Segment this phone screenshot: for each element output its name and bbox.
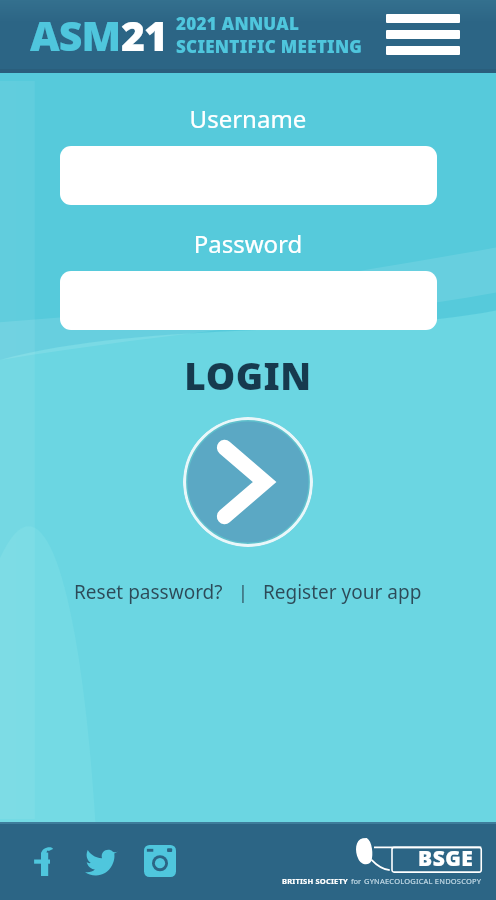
button[interactable]: Facebook xyxy=(22,839,66,883)
button[interactable]: Twitter xyxy=(80,839,124,883)
staticText: Register your app xyxy=(263,579,422,605)
staticText: SCIENTIFIC MEETING xyxy=(176,35,363,58)
button[interactable]: Reset password? xyxy=(70,576,227,608)
staticText: Password xyxy=(0,227,496,260)
staticText: Username xyxy=(0,102,496,135)
button[interactable]: Log in xyxy=(183,417,313,547)
staticText: GYNAECOLOGICAL ENDOSCOPY xyxy=(364,876,482,886)
staticText: BRITISH SOCIETY xyxy=(282,876,351,886)
staticText: BSGE xyxy=(418,844,474,873)
staticText: 2021 ANNUAL xyxy=(176,12,300,35)
button[interactable]: Register your app xyxy=(259,576,426,608)
staticText: Reset password? xyxy=(74,579,223,605)
staticText: ASM xyxy=(30,7,121,63)
staticText: LOGIN xyxy=(0,350,496,400)
staticText: 21 xyxy=(121,7,168,63)
button[interactable]: Instagram xyxy=(138,839,182,883)
staticText: for xyxy=(351,876,364,886)
button[interactable] xyxy=(60,271,437,330)
button[interactable]: Open menu xyxy=(382,10,464,59)
staticText: | xyxy=(238,580,248,605)
button[interactable] xyxy=(60,146,437,205)
button[interactable]: BSGE xyxy=(282,836,482,886)
